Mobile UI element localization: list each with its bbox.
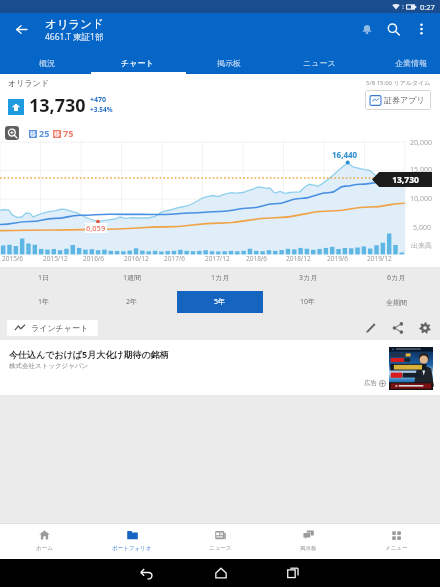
staticText: ラインチャート bbox=[31, 323, 89, 333]
staticText: 5,000 bbox=[413, 223, 431, 233]
button[interactable]: Share bbox=[387, 317, 409, 339]
staticText: 20,000 bbox=[410, 138, 432, 148]
staticText: 2017/6 bbox=[164, 254, 186, 263]
button[interactable]: Zoom bbox=[5, 126, 19, 140]
button[interactable]: 2年 bbox=[89, 291, 175, 313]
staticText: 16,440 bbox=[332, 149, 358, 160]
staticText: メニュー bbox=[385, 545, 408, 552]
button[interactable]: 1カ月 bbox=[176, 267, 264, 289]
staticText: 概況 bbox=[39, 58, 55, 68]
staticText: 企業情報 bbox=[395, 58, 427, 68]
button[interactable]: Advertisement bbox=[389, 347, 433, 390]
staticText: 1週間 bbox=[123, 273, 142, 283]
staticText: 13,730 bbox=[392, 174, 419, 186]
staticText: 1年 bbox=[38, 297, 50, 307]
button[interactable]: 1年 bbox=[1, 291, 87, 313]
button[interactable]: 証券アプリ bbox=[370, 90, 429, 110]
button[interactable]: ポートフォリオ bbox=[88, 524, 176, 559]
button[interactable]: 掲示板 bbox=[183, 52, 274, 74]
button[interactable]: More options bbox=[408, 16, 434, 42]
staticText: 15,000 bbox=[410, 165, 432, 175]
staticText: 移 bbox=[54, 130, 60, 138]
button[interactable]: 5年 bbox=[177, 291, 263, 313]
staticText: 1カ月 bbox=[211, 273, 230, 283]
button[interactable]: 全期間 bbox=[353, 291, 439, 313]
staticText: 3カ月 bbox=[299, 273, 318, 283]
staticText: 6カ月 bbox=[387, 273, 406, 283]
staticText: 25 bbox=[39, 127, 50, 139]
staticText: ニュース bbox=[303, 58, 336, 68]
button[interactable]: Edit bbox=[360, 317, 382, 339]
staticText: 移 bbox=[30, 130, 36, 138]
staticText: 2年 bbox=[126, 297, 138, 307]
staticText: +3.54% bbox=[90, 105, 113, 114]
button[interactable]: 6カ月 bbox=[352, 267, 440, 289]
button[interactable]: 10年 bbox=[265, 291, 351, 313]
staticText: 2019/12 bbox=[367, 254, 392, 263]
button[interactable]: 概況 bbox=[1, 52, 92, 74]
staticText: 1日 bbox=[38, 273, 50, 283]
button[interactable]: 1週間 bbox=[88, 267, 176, 289]
staticText: 10年 bbox=[300, 297, 316, 307]
staticText: ホーム bbox=[36, 545, 53, 552]
staticText: 6,059 bbox=[86, 223, 106, 233]
staticText: 出来高 bbox=[411, 241, 432, 250]
button[interactable]: 移 bbox=[29, 128, 50, 140]
staticText: 2017/12 bbox=[205, 254, 230, 263]
staticText: 今仕込んでおけば5月大化け期待の銘柄 bbox=[9, 348, 169, 360]
button[interactable]: 1日 bbox=[0, 267, 88, 289]
staticText: 2018/6 bbox=[246, 254, 268, 263]
button[interactable]: 企業情報 bbox=[365, 52, 440, 74]
staticText: オリランド bbox=[45, 17, 104, 31]
staticText: 株式会社ストックジャパン bbox=[9, 362, 89, 370]
staticText: 4661.T 東証1部 bbox=[45, 31, 104, 43]
button[interactable]: メニュー bbox=[352, 524, 440, 559]
button[interactable]: Notifications bbox=[354, 16, 380, 42]
staticText: 2016/12 bbox=[124, 254, 149, 263]
staticText: 10,000 bbox=[410, 194, 432, 204]
button[interactable]: ラインチャート bbox=[7, 320, 98, 336]
staticText: 2015/12 bbox=[43, 254, 68, 263]
staticText: 2019/6 bbox=[327, 254, 349, 263]
button[interactable]: ニュース bbox=[176, 524, 264, 559]
staticText: 広告 bbox=[364, 379, 377, 387]
staticText: 2015/6 bbox=[2, 254, 24, 263]
staticText: 2018/12 bbox=[286, 254, 311, 263]
button[interactable]: Search bbox=[380, 16, 406, 42]
staticText: 掲示板 bbox=[300, 545, 317, 552]
staticText: オリランド bbox=[8, 78, 49, 88]
button[interactable]: Back bbox=[133, 560, 159, 586]
staticText: 5年 bbox=[214, 297, 226, 307]
staticText: チャート bbox=[121, 58, 154, 68]
button[interactable]: Settings bbox=[414, 317, 436, 339]
staticText: 5/8 15:00 リアルタイム bbox=[366, 79, 431, 87]
button[interactable]: チャート bbox=[92, 52, 183, 74]
button[interactable]: Home bbox=[208, 560, 234, 586]
staticText: ポートフォリオ bbox=[112, 545, 152, 552]
staticText: 0:27 bbox=[420, 2, 435, 12]
staticText: 75 bbox=[63, 127, 74, 139]
button[interactable]: Back bbox=[8, 16, 34, 42]
button[interactable]: 3カ月 bbox=[264, 267, 352, 289]
staticText: 2016/6 bbox=[83, 254, 105, 263]
staticText: 証券アプリ bbox=[384, 95, 425, 105]
staticText: 13,730 bbox=[29, 93, 86, 117]
staticText: +470 bbox=[90, 95, 107, 105]
staticText: 掲示板 bbox=[217, 58, 241, 68]
button[interactable]: 移 bbox=[53, 128, 74, 140]
button[interactable]: ニュース bbox=[274, 52, 365, 74]
staticText: ニュース bbox=[209, 545, 232, 552]
button[interactable]: ホーム bbox=[0, 524, 88, 559]
button[interactable]: 掲示板 bbox=[264, 524, 352, 559]
button[interactable]: Recents bbox=[280, 560, 306, 586]
staticText: 全期間 bbox=[386, 298, 407, 307]
